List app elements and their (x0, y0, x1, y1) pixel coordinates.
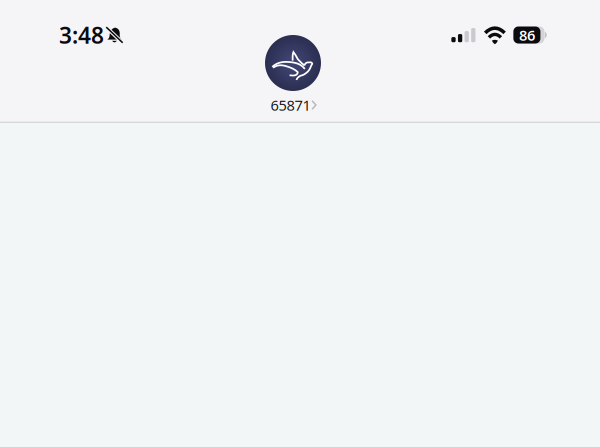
button[interactable]: 65871, contact details (246, 35, 342, 113)
staticText: 86 (519, 25, 535, 45)
staticText: 3:48 (59, 20, 104, 50)
staticText: 65871 (270, 95, 310, 115)
